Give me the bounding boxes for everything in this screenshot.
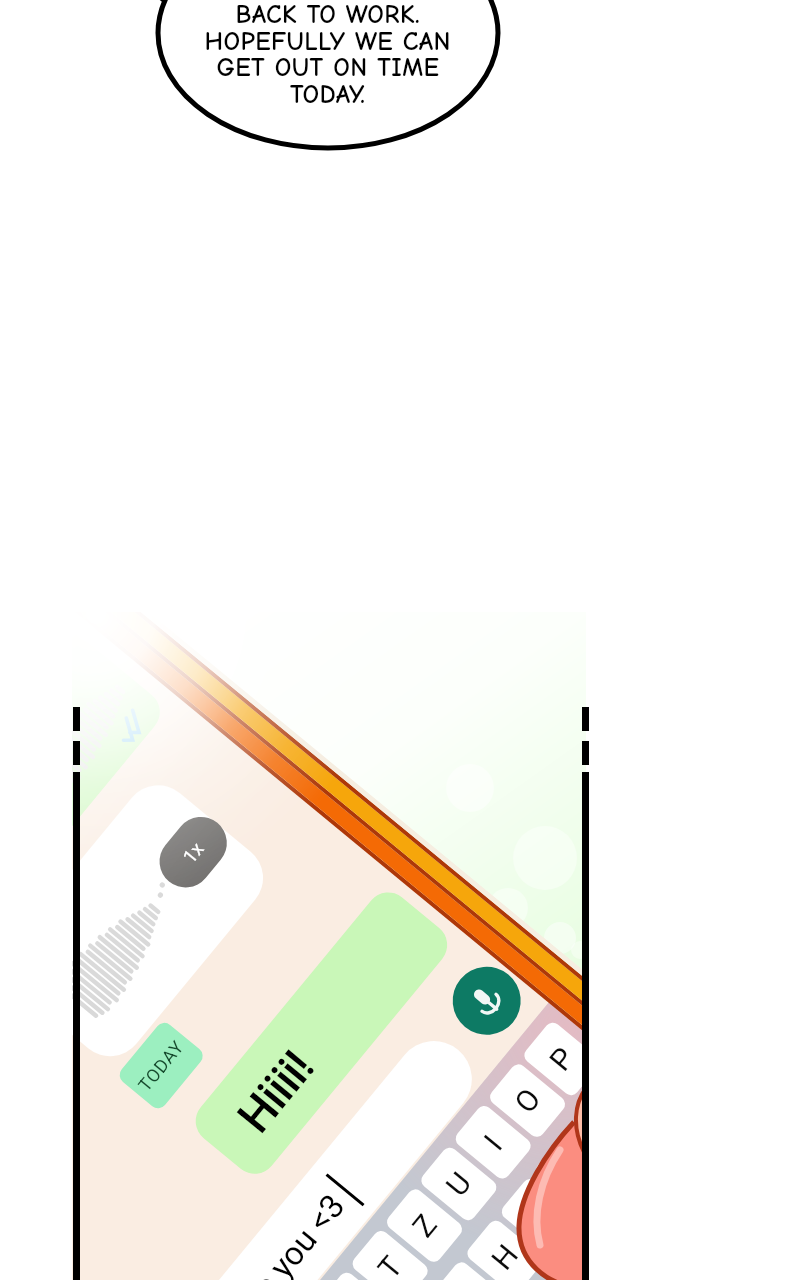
button[interactable]: Message input [300,1040,460,1240]
button[interactable]: Record voice message [457,971,525,1039]
